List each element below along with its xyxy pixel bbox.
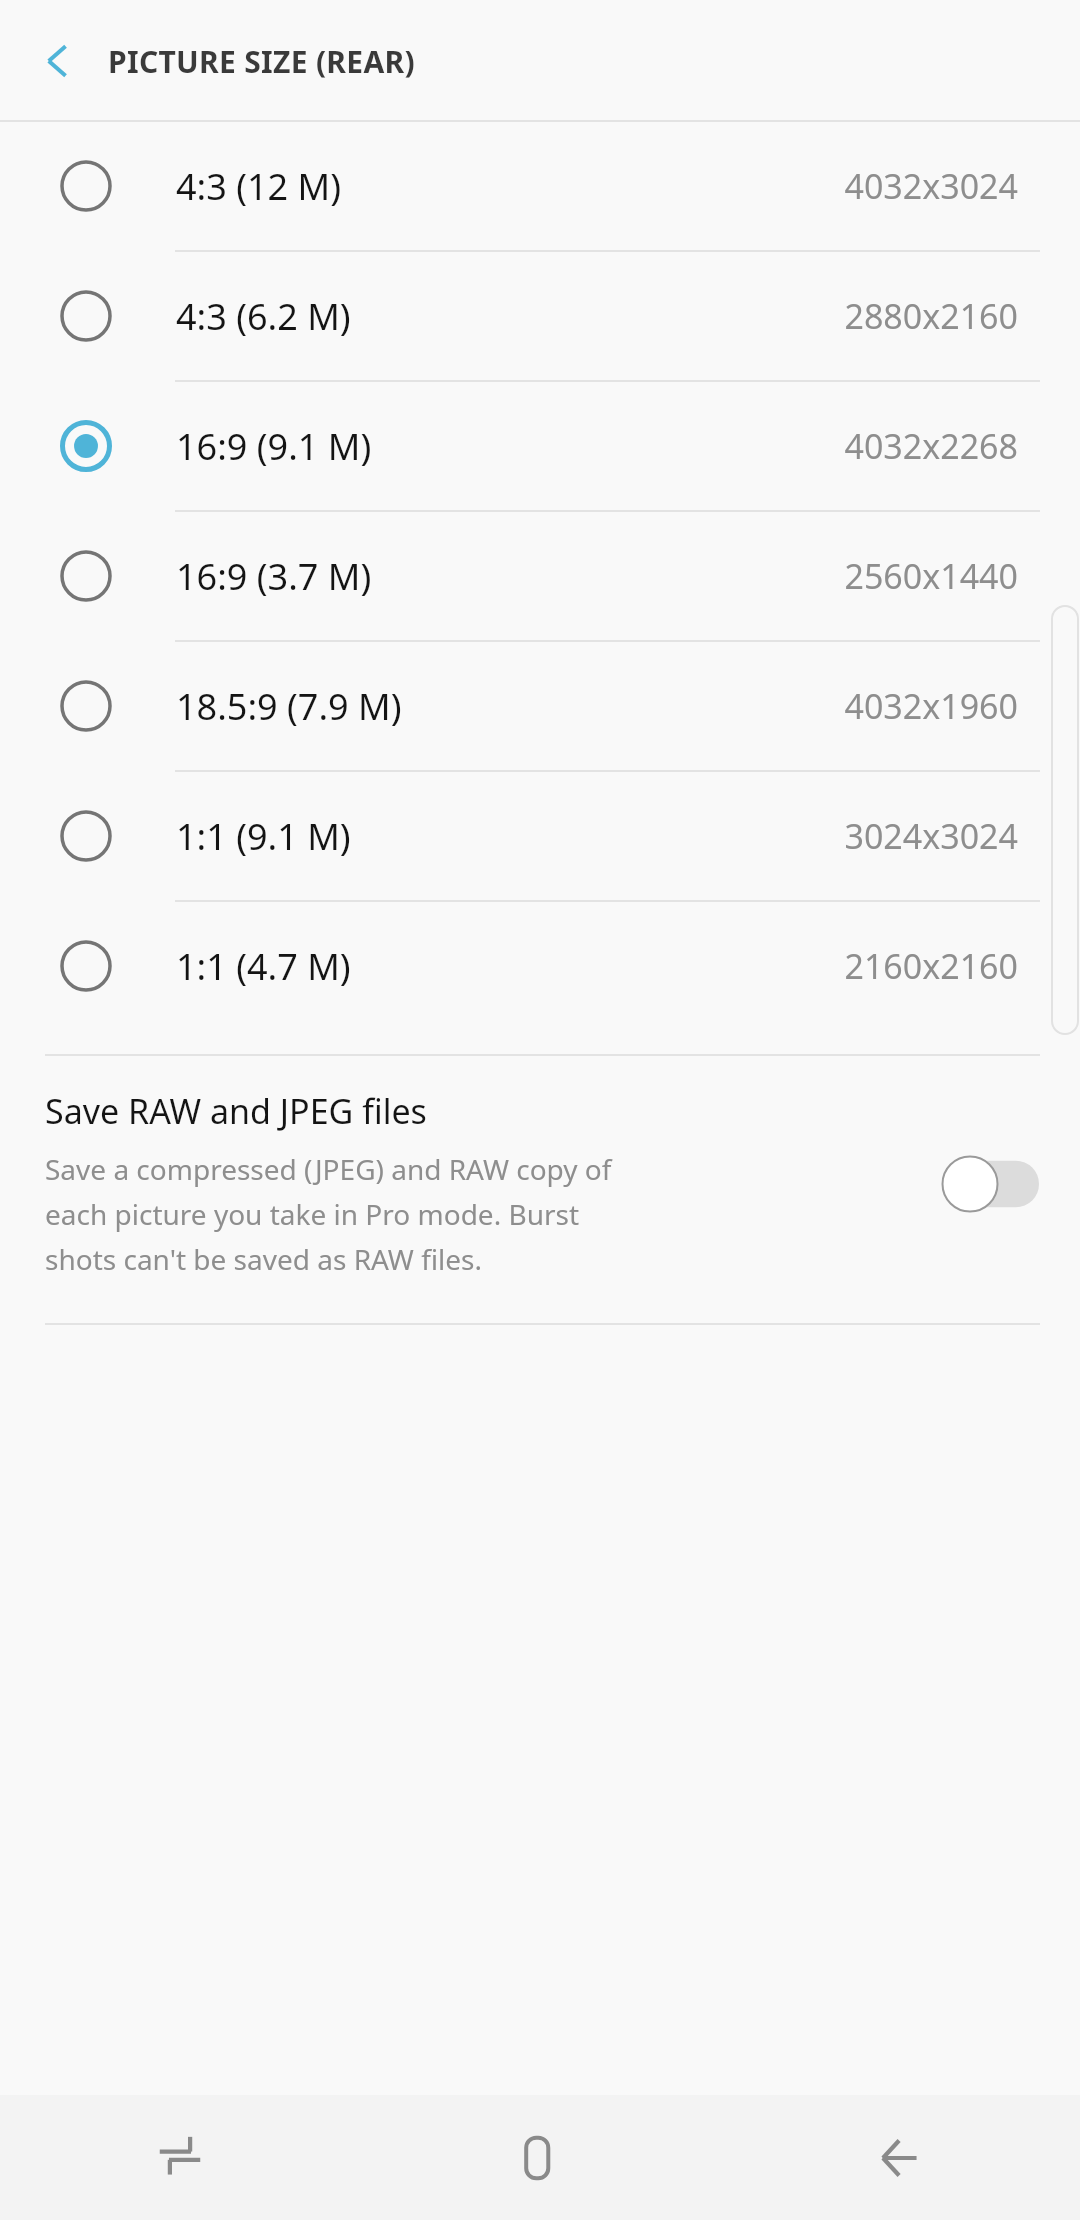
staticText: 16:9 (3.7 M) — [176, 552, 844, 601]
staticText: 3024x3024 — [844, 813, 1018, 859]
staticText: 1:1 (4.7 M) — [176, 942, 844, 991]
button[interactable]: 4:3 (12 M) — [0, 122, 1080, 250]
button[interactable]: Recent apps — [0, 2095, 360, 2220]
staticText: 2560x1440 — [844, 553, 1018, 599]
staticText: PICTURE SIZE (REAR) — [108, 41, 415, 82]
staticText: 2880x2160 — [844, 293, 1018, 339]
button[interactable]: Navigate up — [20, 23, 96, 99]
button[interactable]: 1:1 (4.7 M) — [0, 902, 1080, 1030]
button[interactable]: 16:9 (3.7 M) — [0, 512, 1080, 640]
staticText: Save a compressed (JPEG) and RAW copy of… — [45, 1150, 650, 1279]
button[interactable]: 18.5:9 (7.9 M) — [0, 642, 1080, 770]
staticText: 4032x3024 — [844, 163, 1018, 209]
button[interactable]: Home — [360, 2095, 720, 2220]
staticText: 4:3 (6.2 M) — [176, 292, 844, 341]
staticText: 4032x2268 — [844, 423, 1018, 469]
staticText: 2160x2160 — [844, 943, 1018, 989]
staticText: 18.5:9 (7.9 M) — [176, 682, 844, 731]
staticText: 16:9 (9.1 M) — [176, 422, 844, 471]
staticText: 4:3 (12 M) — [176, 162, 844, 211]
button[interactable]: 16:9 (9.1 M) — [0, 382, 1080, 510]
staticText: Save RAW and JPEG files — [45, 1088, 427, 1134]
staticText: 1:1 (9.1 M) — [176, 812, 844, 861]
button[interactable]: Back — [720, 2095, 1080, 2220]
button[interactable]: 1:1 (9.1 M) — [0, 772, 1080, 900]
button[interactable]: Save RAW and JPEG files — [930, 1142, 1050, 1226]
staticText: 4032x1960 — [844, 683, 1018, 729]
button[interactable]: 4:3 (6.2 M) — [0, 252, 1080, 380]
